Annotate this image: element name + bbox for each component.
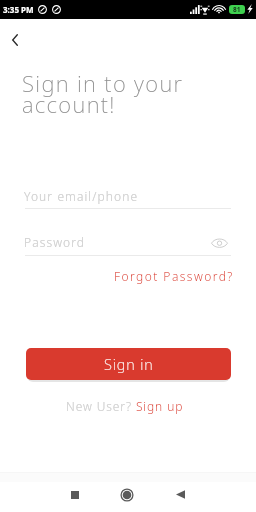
button[interactable]: Show password — [208, 233, 231, 253]
staticText: New User? Sign up — [66, 398, 184, 414]
button[interactable]: Recent apps — [55, 475, 95, 512]
staticText: 81 — [233, 5, 241, 14]
button[interactable]: New User? Sign up — [62, 395, 188, 417]
button[interactable]: Forgot Password? — [114, 268, 234, 284]
button[interactable]: Back — [160, 475, 200, 512]
staticText: Your email/phone — [24, 188, 139, 204]
staticText: Sign in — [104, 354, 154, 374]
staticText: Forgot Password? — [114, 268, 234, 284]
button[interactable]: Back — [1, 27, 26, 52]
staticText: Sign in to your account! — [22, 68, 184, 119]
staticText: 3:35 PM — [3, 4, 34, 15]
staticText: Password — [24, 234, 86, 250]
button[interactable]: Sign in — [26, 348, 231, 380]
button[interactable]: Home — [107, 475, 147, 512]
